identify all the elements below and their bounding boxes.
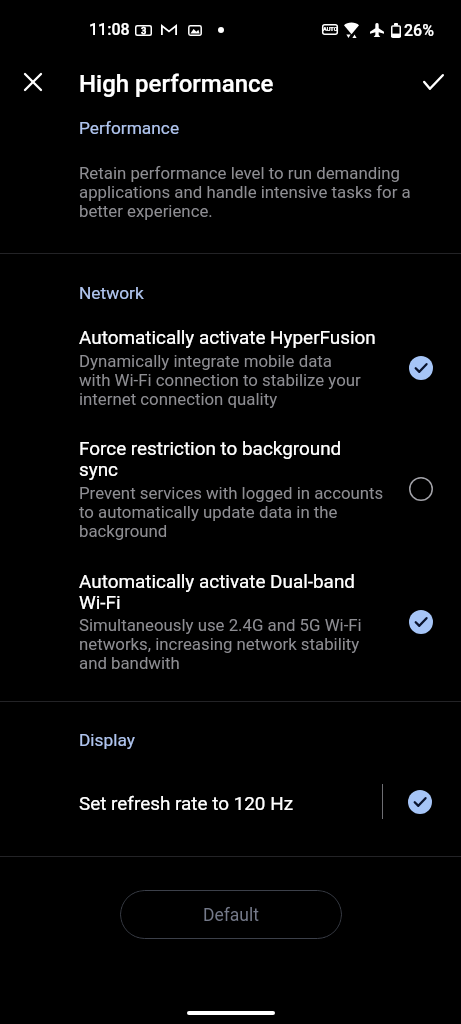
staticText: 26% xyxy=(404,21,434,40)
staticText: AUTO xyxy=(323,26,338,33)
button[interactable]: Close xyxy=(10,59,56,105)
staticText: Automatically activate Dual-band Wi-Fi xyxy=(79,571,355,613)
staticText: Retain performance level to run demandin… xyxy=(79,164,411,221)
button[interactable] xyxy=(0,561,461,685)
staticText: Simultaneously use 2.4G and 5G Wi-Fi net… xyxy=(79,616,362,673)
staticText: Set refresh rate to 120 Hz xyxy=(79,793,294,814)
staticText: Network xyxy=(79,283,144,303)
button[interactable] xyxy=(0,428,461,552)
staticText: High performance xyxy=(79,70,274,98)
staticText: 3 xyxy=(141,25,147,36)
button[interactable]: Confirm xyxy=(410,59,456,105)
staticText: Prevent services with logged in accounts… xyxy=(79,484,384,541)
button[interactable] xyxy=(0,775,461,837)
staticText: Dynamically integrate mobile data with W… xyxy=(79,352,361,409)
button[interactable]: Default xyxy=(120,890,342,939)
staticText: Default xyxy=(203,905,259,925)
staticText: 11:08 xyxy=(89,20,130,39)
staticText: Force restriction to background sync xyxy=(79,438,342,480)
staticText: Display xyxy=(79,730,135,750)
button[interactable] xyxy=(0,315,461,420)
staticText: Performance xyxy=(79,118,180,138)
staticText: Automatically activate HyperFusion xyxy=(79,327,376,348)
